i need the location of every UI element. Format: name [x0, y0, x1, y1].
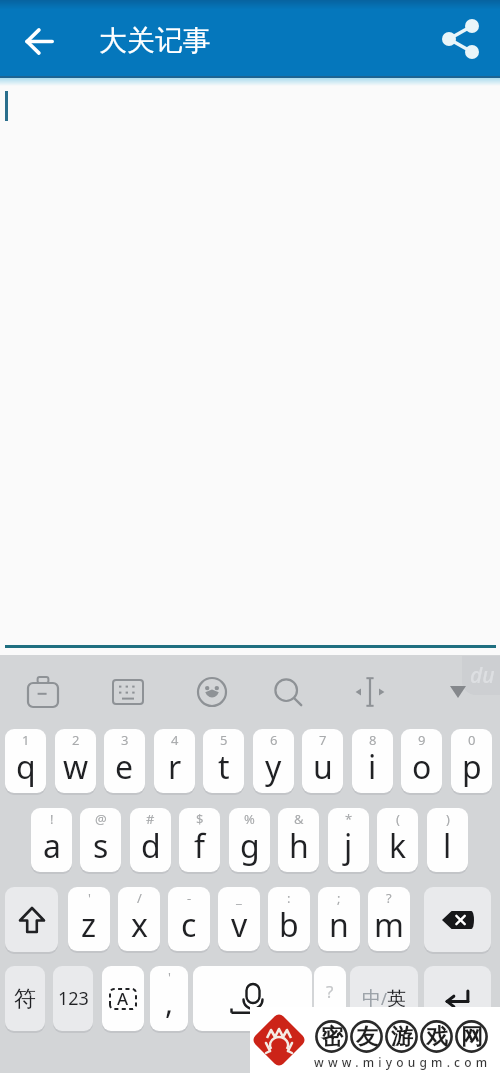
button[interactable]: ! — [31, 808, 72, 872]
button[interactable]: ) — [427, 808, 468, 872]
staticText: 7 — [319, 731, 327, 749]
staticText: e — [115, 745, 134, 789]
button[interactable]: ? — [368, 887, 410, 951]
button[interactable]: A — [102, 966, 144, 1031]
staticText: i — [368, 745, 377, 789]
button[interactable]: 0 — [451, 729, 492, 793]
button[interactable]: 5 — [203, 729, 244, 793]
button[interactable]: ; — [318, 887, 360, 951]
staticText: : — [287, 889, 291, 907]
staticText: % — [244, 810, 255, 828]
staticText: n — [329, 903, 349, 947]
staticText: 5 — [220, 731, 228, 749]
button[interactable]: ' — [150, 966, 188, 1031]
staticText: 中 — [362, 987, 381, 1011]
button[interactable]: 9 — [401, 729, 442, 793]
staticText: v — [231, 903, 248, 947]
staticText: r — [168, 745, 182, 789]
staticText: d — [141, 824, 161, 868]
staticText: 友 — [356, 1023, 378, 1051]
staticText: t — [218, 745, 230, 789]
button[interactable] — [27, 673, 59, 710]
staticText: 网 — [461, 1023, 483, 1051]
staticText: h — [289, 824, 309, 868]
button[interactable]: 6 — [253, 729, 294, 793]
staticText: , — [165, 982, 174, 1023]
button[interactable]: @ — [80, 808, 121, 872]
staticText: 3 — [121, 731, 129, 749]
staticText: 大关记事 — [99, 23, 211, 58]
button[interactable] — [424, 966, 491, 1031]
staticText: b — [279, 903, 299, 947]
button[interactable]: # — [130, 808, 171, 872]
button[interactable]: ' — [68, 887, 110, 951]
staticText: m — [374, 903, 404, 947]
staticText: a — [43, 824, 61, 868]
button[interactable]: - — [168, 887, 210, 951]
staticText: 英 — [387, 987, 406, 1011]
button[interactable]: : — [268, 887, 310, 951]
staticText: z — [81, 903, 97, 947]
button[interactable]: 4 — [154, 729, 195, 793]
button[interactable] — [11, 13, 67, 69]
staticText: g — [240, 824, 260, 868]
staticText: x — [131, 903, 148, 947]
staticText: * — [345, 810, 353, 828]
button[interactable]: 中 — [350, 966, 418, 1031]
staticText: 符 — [14, 985, 36, 1013]
button[interactable] — [193, 966, 312, 1031]
button[interactable]: _ — [218, 887, 260, 951]
button[interactable]: & — [278, 808, 319, 872]
staticText: ? — [386, 889, 392, 907]
staticText: # — [146, 810, 155, 828]
staticText: 8 — [369, 731, 377, 749]
staticText: ; — [337, 889, 341, 907]
staticText: $ — [196, 810, 204, 828]
staticText: 0 — [468, 731, 476, 749]
staticText: 123 — [58, 986, 89, 1011]
button[interactable]: 1 — [5, 729, 46, 793]
button[interactable]: 8 — [352, 729, 393, 793]
button[interactable] — [424, 887, 491, 952]
staticText: 6 — [270, 731, 278, 749]
button[interactable] — [444, 675, 472, 708]
button[interactable] — [272, 673, 304, 710]
button[interactable]: * — [328, 808, 369, 872]
button[interactable]: 符 — [5, 966, 45, 1031]
button[interactable] — [354, 673, 386, 710]
button[interactable]: $ — [179, 808, 220, 872]
staticText: ' — [88, 889, 91, 907]
button[interactable] — [196, 673, 228, 710]
staticText: 密 — [321, 1023, 343, 1051]
staticText: A — [117, 987, 129, 1010]
button[interactable]: 3 — [104, 729, 145, 793]
staticText: f — [194, 824, 206, 868]
staticText: p — [462, 745, 482, 789]
button[interactable]: 123 — [53, 966, 93, 1031]
staticText: o — [412, 745, 432, 789]
staticText: k — [389, 824, 407, 868]
staticText: ' — [168, 968, 171, 986]
button[interactable]: ( — [377, 808, 418, 872]
button[interactable]: 7 — [302, 729, 343, 793]
button[interactable] — [438, 15, 486, 63]
staticText: du — [470, 661, 495, 690]
staticText: s — [93, 824, 109, 868]
staticText: / — [381, 988, 387, 1010]
staticText: 1 — [22, 731, 30, 749]
staticText: q — [16, 745, 36, 789]
button[interactable]: % — [229, 808, 270, 872]
staticText: & — [294, 810, 304, 828]
staticText: c — [181, 903, 197, 947]
staticText: 游 — [391, 1023, 413, 1051]
staticText: / — [137, 889, 142, 907]
staticText: ( — [396, 810, 400, 828]
staticText: w — [63, 745, 89, 789]
staticText: y — [265, 745, 282, 789]
button[interactable]: / — [118, 887, 160, 951]
button[interactable] — [112, 673, 144, 710]
staticText: j — [344, 824, 353, 868]
button[interactable]: ? — [314, 966, 346, 1031]
button[interactable]: 2 — [55, 729, 96, 793]
button[interactable] — [5, 887, 58, 952]
